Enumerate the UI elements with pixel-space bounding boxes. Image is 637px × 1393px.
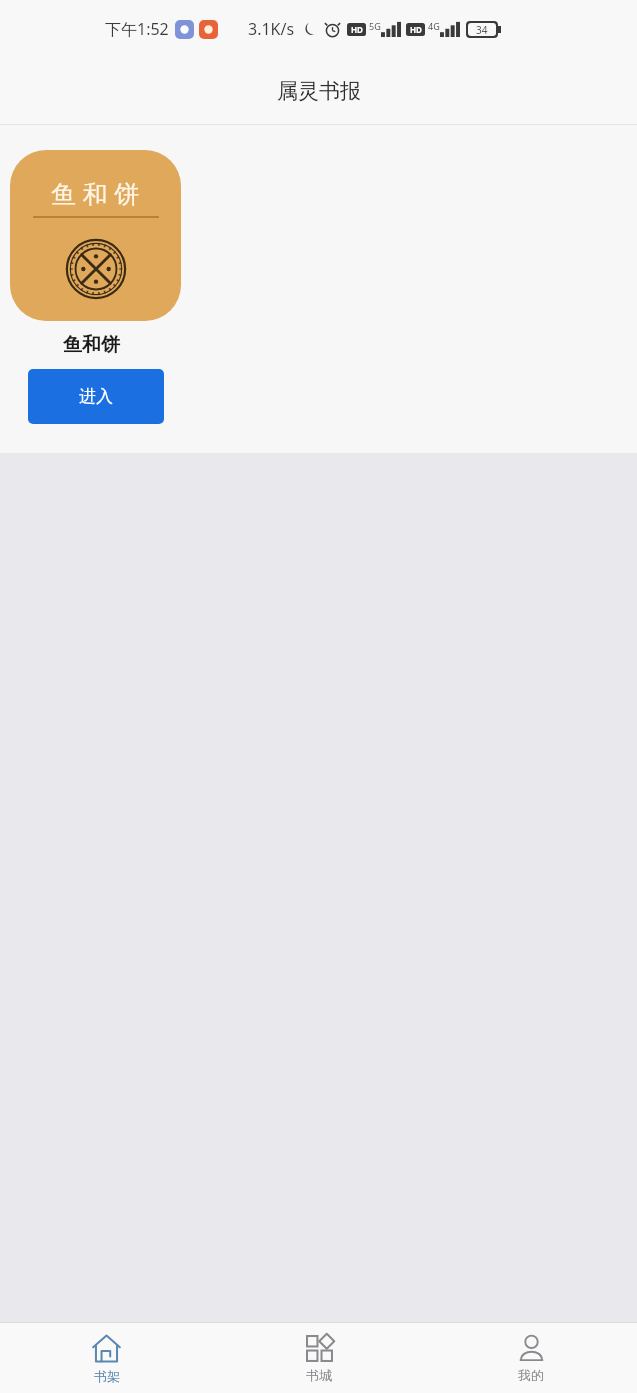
staticText: 3.1K/s: [248, 18, 295, 40]
staticText: 5G: [369, 20, 381, 32]
staticText: HD: [351, 24, 363, 35]
button[interactable]: 进入: [28, 369, 164, 424]
other: 我的: [517, 1334, 546, 1363]
staticText: 鱼和饼: [63, 333, 120, 357]
staticText: 4G: [428, 20, 440, 32]
staticText: 我的: [518, 1367, 544, 1383]
staticText: 书架: [94, 1368, 120, 1384]
button[interactable]: 我的: [425, 1323, 637, 1393]
staticText: HD: [410, 24, 422, 35]
other: 书城: [305, 1334, 334, 1363]
staticText: 进入: [79, 386, 113, 407]
staticText: 书城: [306, 1367, 332, 1383]
staticText: 下午1:52: [105, 18, 169, 40]
button[interactable]: 书城: [213, 1323, 425, 1393]
button[interactable]: 鱼 和 饼: [10, 150, 181, 424]
other: 书架: [91, 1333, 122, 1364]
staticText: 34: [476, 23, 488, 36]
staticText: 鱼 和 饼: [51, 176, 140, 210]
button[interactable]: 书架: [0, 1323, 213, 1393]
staticText: 属灵书报: [277, 78, 361, 104]
